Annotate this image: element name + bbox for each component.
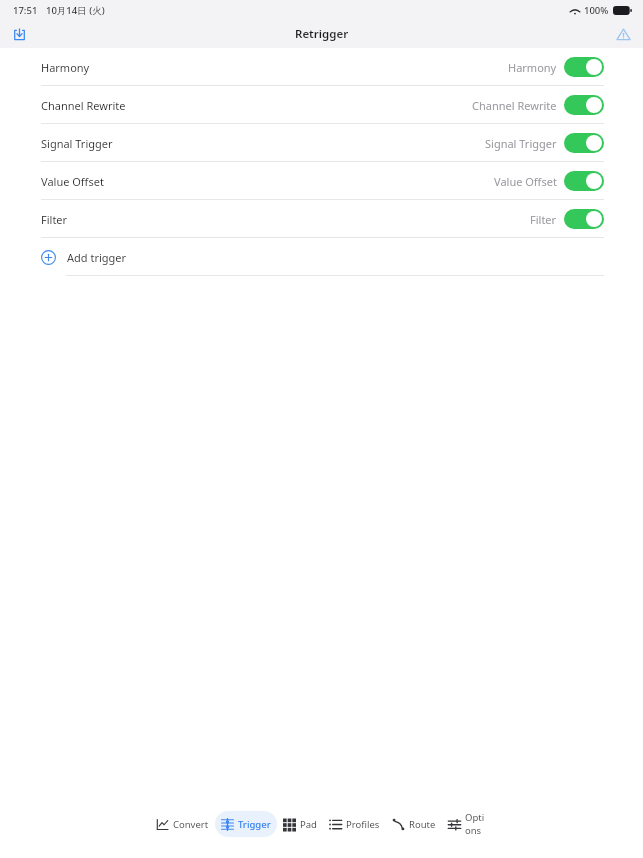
staticText: Value Offset (494, 174, 557, 189)
button[interactable]: Add trigger (0, 238, 643, 276)
staticText: Signal Trigger (485, 136, 557, 151)
button[interactable]: Route (386, 811, 442, 837)
staticText: Pad (300, 818, 317, 831)
staticText: Add trigger (67, 250, 127, 265)
button[interactable]: Signal Trigger (0, 124, 643, 162)
button[interactable]: Harmony toggle (564, 57, 604, 77)
button[interactable]: Value Offset (0, 162, 643, 200)
staticText: Options (465, 811, 488, 837)
button[interactable]: Import (8, 23, 30, 45)
button[interactable]: Channel Rewrite (0, 86, 643, 124)
button[interactable]: Options (442, 811, 494, 837)
button[interactable]: Filter (0, 200, 643, 238)
staticText: 17:51 (13, 4, 38, 17)
button[interactable]: Convert (150, 811, 215, 837)
button[interactable]: Harmony (0, 48, 643, 86)
staticText: 100% (584, 4, 609, 17)
staticText: Route (409, 818, 436, 831)
staticText: Convert (173, 818, 209, 831)
button[interactable]: Value Offset toggle (564, 171, 604, 191)
staticText: Harmony (508, 60, 557, 75)
button[interactable]: Channel Rewrite toggle (564, 95, 604, 115)
button[interactable]: Signal Trigger toggle (564, 133, 604, 153)
staticText: Retrigger (295, 26, 349, 42)
button[interactable]: Filter toggle (564, 209, 604, 229)
staticText: Filter (530, 212, 557, 227)
staticText: Value Offset (41, 174, 104, 189)
staticText: Harmony (41, 60, 90, 75)
button[interactable]: Pad (277, 811, 323, 837)
staticText: Channel Rewrite (41, 98, 126, 113)
staticText: Signal Trigger (41, 136, 113, 151)
staticText: Filter (41, 212, 68, 227)
staticText: Trigger (238, 818, 271, 831)
button[interactable]: Profiles (323, 811, 386, 837)
button[interactable]: Warning (612, 23, 634, 45)
button[interactable]: Trigger (215, 811, 277, 837)
staticText: 10月14日 (火) (46, 4, 105, 17)
staticText: Channel Rewrite (472, 98, 557, 113)
staticText: Profiles (346, 818, 380, 831)
